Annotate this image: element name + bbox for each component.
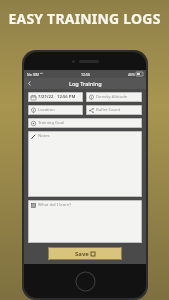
- staticText: Training Goal: [38, 120, 65, 126]
- staticText: 46%: [128, 72, 135, 77]
- staticText: Bullet Count: [96, 107, 121, 113]
- button[interactable]: Training Goal: [28, 118, 142, 128]
- button[interactable]: Save: [48, 247, 122, 260]
- button[interactable]: Back: [24, 78, 35, 89]
- staticText: 7/21/22: [38, 94, 54, 100]
- staticText: Save: [75, 250, 89, 258]
- staticText: Notes: [38, 133, 50, 139]
- button[interactable]: Density Altitude: [86, 92, 142, 102]
- staticText: Density Altitude: [96, 94, 128, 100]
- button[interactable]: Bullet Count: [86, 105, 142, 115]
- staticText: Location: [38, 107, 55, 113]
- staticText: 12:56: [81, 72, 90, 77]
- button[interactable]: Location: [28, 105, 83, 115]
- button[interactable]: What did I learn?: [28, 200, 142, 243]
- staticText: What did I learn?: [38, 202, 72, 208]
- staticText: No SIM: [27, 72, 39, 77]
- staticText: Log Training: [69, 80, 102, 87]
- button[interactable]: Notes: [28, 131, 142, 197]
- staticText: EASY TRAINING LOGS: [8, 9, 161, 28]
- staticText: 12:56 PM: [57, 94, 76, 100]
- button[interactable]: 7/21/22: [28, 92, 83, 102]
